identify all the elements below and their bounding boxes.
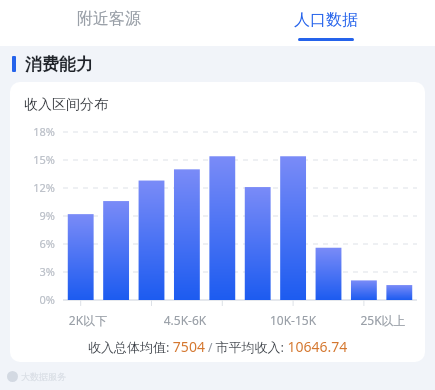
staticText: 大数据服务: [21, 371, 66, 382]
other: Watermark: [7, 371, 66, 382]
staticText: 4.5K-6K: [140, 312, 230, 328]
staticText: 2K以下: [43, 312, 133, 328]
staticText: 人口数据: [294, 10, 358, 30]
staticText: 0%: [10, 292, 55, 307]
staticText: 收入区间分布: [24, 96, 108, 114]
staticText: 收入总体均值: 7504 / 市平均收入: 10646.74: [88, 337, 348, 356]
staticText: 3%: [10, 264, 55, 279]
button[interactable]: 人口数据: [217, 0, 435, 46]
staticText: 9%: [10, 208, 55, 223]
staticText: 12%: [10, 180, 55, 195]
button[interactable]: 收入区间分布: [10, 82, 425, 362]
staticText: 消费能力: [25, 54, 93, 75]
staticText: 25K以上: [338, 312, 425, 328]
staticText: 附近客源: [77, 9, 141, 29]
staticText: 15%: [10, 152, 55, 167]
button[interactable]: 附近客源: [0, 0, 217, 46]
staticText: 18%: [10, 124, 55, 139]
staticText: 6%: [10, 236, 55, 251]
staticText: 10K-15K: [248, 312, 338, 328]
